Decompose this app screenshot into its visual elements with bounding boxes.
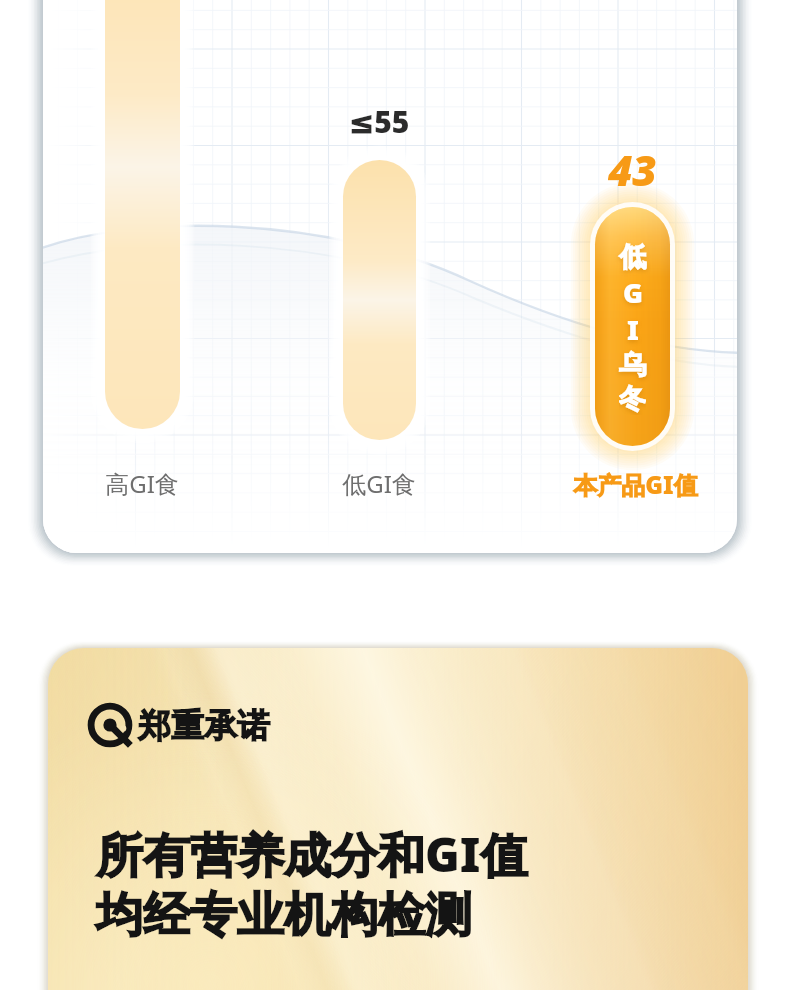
staticText: G <box>623 274 643 311</box>
staticText: 乌 <box>619 348 646 382</box>
staticText: 高GI食品 <box>94 467 190 501</box>
staticText: 本产品GI值 <box>573 468 698 501</box>
button[interactable]: GI值对比图表 <box>43 0 737 553</box>
staticText: I <box>627 311 639 348</box>
button[interactable]: 郑重承诺：所有营养成分和GI值均经专业机构检测 <box>48 648 748 990</box>
staticText: 低GI食品 <box>331 467 427 501</box>
staticText: 所有营养成分和GI值 <box>96 822 528 886</box>
staticText: 43 <box>608 141 657 191</box>
staticText: 郑重承诺 <box>138 705 270 747</box>
staticText: ≤55 <box>349 101 410 141</box>
staticText: 均经专业机构检测 <box>96 886 472 945</box>
staticText: 冬 <box>619 382 646 415</box>
other: 认证标志 <box>88 703 132 747</box>
staticText: 低 <box>619 240 646 274</box>
